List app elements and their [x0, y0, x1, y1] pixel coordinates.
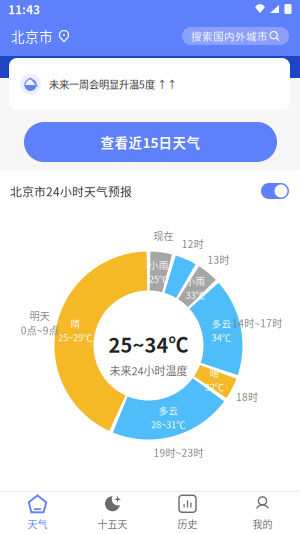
- staticText: 小雨: [149, 258, 169, 272]
- staticText: 查看近15日天气: [100, 132, 200, 152]
- button[interactable]: 查看近15日天气: [24, 122, 277, 162]
- button[interactable]: 北京市: [11, 22, 70, 50]
- staticText: 天气: [27, 517, 47, 531]
- staticText: 13时: [208, 252, 230, 267]
- staticText: 历史: [177, 517, 197, 531]
- staticText: 28~31℃: [151, 417, 186, 431]
- staticText: 12时: [182, 236, 204, 251]
- button[interactable]: 我的: [225, 491, 300, 534]
- staticText: 十五天: [97, 517, 127, 531]
- staticText: 19时~23时: [153, 445, 203, 460]
- staticText: 多云: [159, 403, 179, 417]
- staticText: 34℃: [211, 330, 231, 344]
- staticText: 北京市: [11, 26, 53, 46]
- button[interactable]: 天气: [0, 491, 75, 534]
- staticText: 0点~9点: [21, 323, 59, 337]
- staticText: 晴: [71, 317, 81, 330]
- staticText: 14时~17时: [232, 316, 282, 330]
- staticText: 现在: [154, 228, 174, 243]
- staticText: 18时: [236, 389, 258, 404]
- staticText: 北京市24小时天气预报: [10, 182, 132, 200]
- staticText: 未来24小时温度: [109, 362, 187, 378]
- staticText: 多云: [211, 317, 231, 330]
- staticText: 未来一周会明显升温5度 ↑↑: [49, 77, 177, 91]
- staticText: 33℃: [185, 288, 205, 301]
- staticText: 25℃: [149, 272, 169, 285]
- button[interactable]: 历史: [150, 491, 225, 534]
- staticText: 11:43: [8, 0, 40, 18]
- staticText: 我的: [252, 517, 272, 531]
- staticText: 搜索国内外城市: [191, 28, 268, 44]
- button[interactable]: 十五天: [75, 491, 150, 534]
- button[interactable]: 搜索国内外城市: [182, 27, 289, 45]
- staticText: 明天: [30, 308, 50, 323]
- staticText: 25~34℃: [108, 330, 188, 359]
- staticText: 32℃: [205, 380, 225, 394]
- staticText: 25~29℃: [58, 330, 93, 344]
- staticText: 小雨: [185, 274, 205, 288]
- button[interactable]: 未来一周会明显升温5度 ↑↑: [9, 58, 290, 110]
- staticText: 晴: [210, 366, 220, 380]
- button[interactable]: [260, 181, 290, 201]
